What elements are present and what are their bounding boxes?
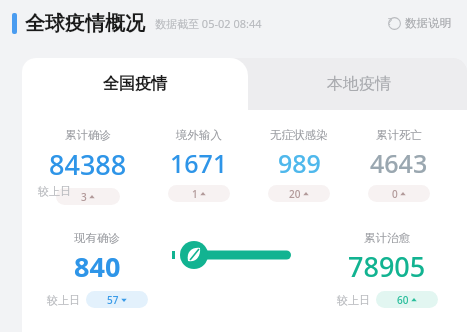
staticText: 累计死亡 [376,128,422,142]
button[interactable]: 境外输入 [149,128,249,202]
staticText: 0 [392,187,398,201]
button[interactable]: 1 [168,185,230,202]
staticText: 境外输入 [176,128,222,142]
staticText: 较上日 [47,293,80,307]
staticText: 累计治愈 [364,231,410,245]
staticText: 840 [74,248,121,285]
staticText: 1671 [170,146,228,180]
staticText: ? [388,15,392,27]
staticText: 现有确诊 [74,231,120,245]
staticText: 57 [107,293,119,307]
button[interactable]: 57 [86,291,148,308]
button[interactable]: 本地疫情 [248,58,467,110]
staticText: 全球疫情概况 [25,11,145,36]
button[interactable]: 0 [368,185,430,202]
button[interactable]: 累计死亡 [349,128,449,202]
button[interactable]: 无症状感染 [249,128,349,202]
button[interactable]: 3 [56,188,120,205]
staticText: 无症状感染 [270,128,328,142]
button[interactable]: 数据说明 [386,14,453,32]
staticText: 本地疫情 [327,74,391,94]
staticText: 数据说明 [405,16,451,30]
button[interactable]: 60 [376,291,438,308]
staticText: 数据截至 05-02 08:44 [155,16,262,31]
staticText: 1 [192,187,198,201]
staticText: 较上日 [337,293,370,307]
staticText: 累计确诊 [65,128,111,142]
button[interactable]: 现有确诊 [22,231,172,308]
button[interactable]: 20 [268,185,330,202]
staticText: 84388 [49,146,127,183]
button[interactable]: 累计治愈 [307,231,467,308]
staticText: 4643 [370,146,428,180]
staticText: 全国疫情 [103,74,167,94]
staticText: 78905 [348,248,426,285]
button[interactable]: 全国疫情 [22,58,248,110]
staticText: 较上日 [38,184,71,198]
button[interactable]: 累计确诊 [26,128,149,205]
staticText: 3 [81,190,87,204]
staticText: 60 [397,293,409,307]
staticText: 989 [278,146,321,180]
staticText: 20 [289,187,301,201]
